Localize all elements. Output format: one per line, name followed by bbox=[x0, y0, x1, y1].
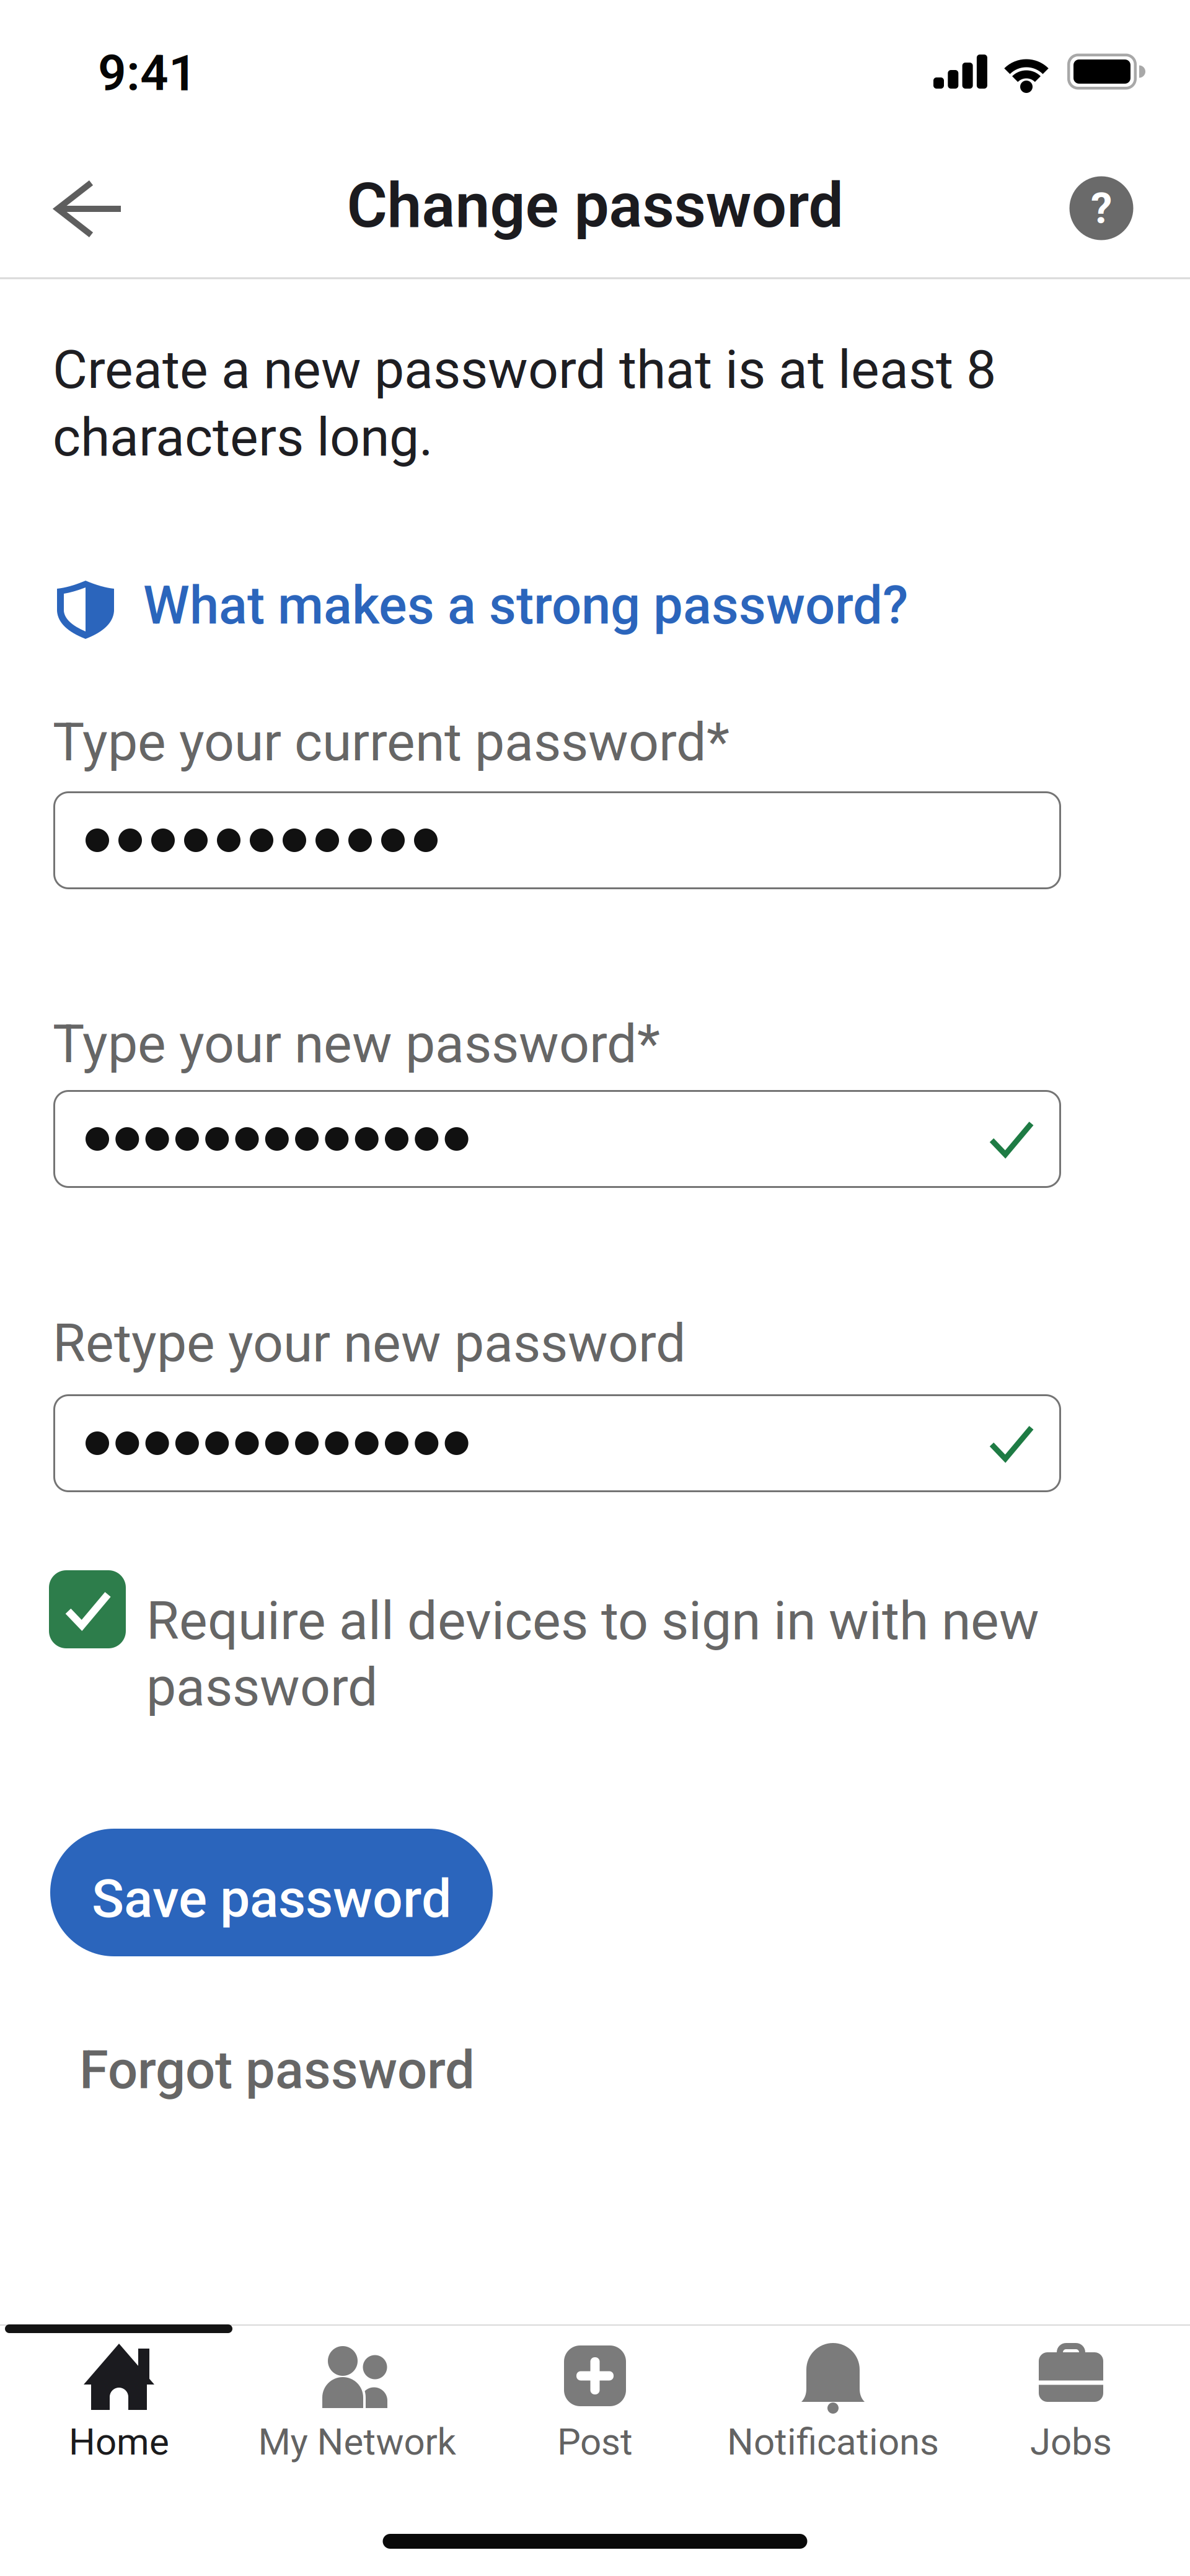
staticText: What makes a strong password? bbox=[143, 575, 908, 636]
staticText: Forgot password bbox=[79, 2039, 475, 2101]
staticText: My Network bbox=[258, 2420, 456, 2464]
button[interactable]: ? bbox=[1069, 176, 1133, 240]
staticText: Create a new password that is at least 8 bbox=[53, 338, 996, 401]
staticText: ? bbox=[1091, 183, 1112, 233]
staticText: Notifications bbox=[727, 2420, 939, 2464]
button[interactable]: Notifications bbox=[714, 2325, 952, 2460]
staticText: characters long. bbox=[53, 406, 433, 468]
button[interactable]: Save password bbox=[50, 1829, 493, 1956]
staticText: Save password bbox=[92, 1867, 451, 1930]
button[interactable]: Require all devices to sign in with new bbox=[49, 1570, 1078, 1726]
button[interactable]: Forgot password bbox=[79, 2039, 575, 2101]
staticText: 9:41 bbox=[98, 44, 197, 102]
staticText: Jobs bbox=[1030, 2420, 1112, 2464]
button[interactable]: Home bbox=[0, 2325, 238, 2460]
button[interactable]: My Network bbox=[238, 2325, 476, 2460]
button[interactable] bbox=[35, 174, 140, 244]
button[interactable] bbox=[53, 791, 1061, 889]
staticText: Retype your new password bbox=[53, 1312, 686, 1374]
button[interactable]: Post bbox=[476, 2325, 714, 2460]
staticText: Require all devices to sign in with new bbox=[146, 1590, 1039, 1652]
staticText: Change password bbox=[347, 169, 843, 242]
button[interactable] bbox=[53, 1394, 1061, 1492]
button[interactable]: Jobs bbox=[952, 2325, 1190, 2460]
staticText: password bbox=[146, 1656, 378, 1718]
staticText: Type your new password* bbox=[53, 1013, 660, 1075]
staticText: Type your current password* bbox=[53, 711, 729, 773]
button[interactable] bbox=[53, 1090, 1061, 1188]
staticText: Post bbox=[557, 2420, 633, 2464]
button[interactable]: What makes a strong password? bbox=[53, 576, 1020, 644]
staticText: Home bbox=[69, 2420, 169, 2464]
